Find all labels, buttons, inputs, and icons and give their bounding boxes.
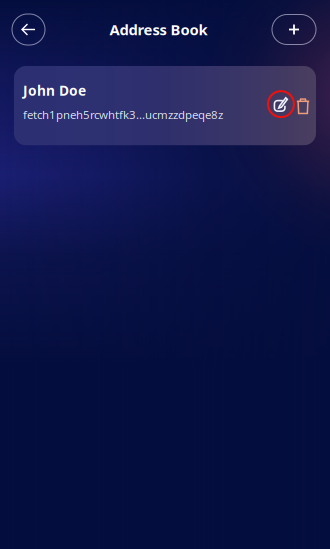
button[interactable]: Edit (268, 91, 294, 117)
staticText: Address Book (109, 19, 207, 40)
button[interactable]: John Doe (14, 66, 316, 145)
staticText: John Doe (23, 81, 86, 100)
staticText: fetch1pneh5rcwhtfk3...ucmzzdpeqe8z (23, 107, 223, 122)
button[interactable]: Back (12, 14, 45, 45)
button[interactable]: Add address (272, 14, 316, 44)
button[interactable]: Delete (296, 94, 310, 114)
